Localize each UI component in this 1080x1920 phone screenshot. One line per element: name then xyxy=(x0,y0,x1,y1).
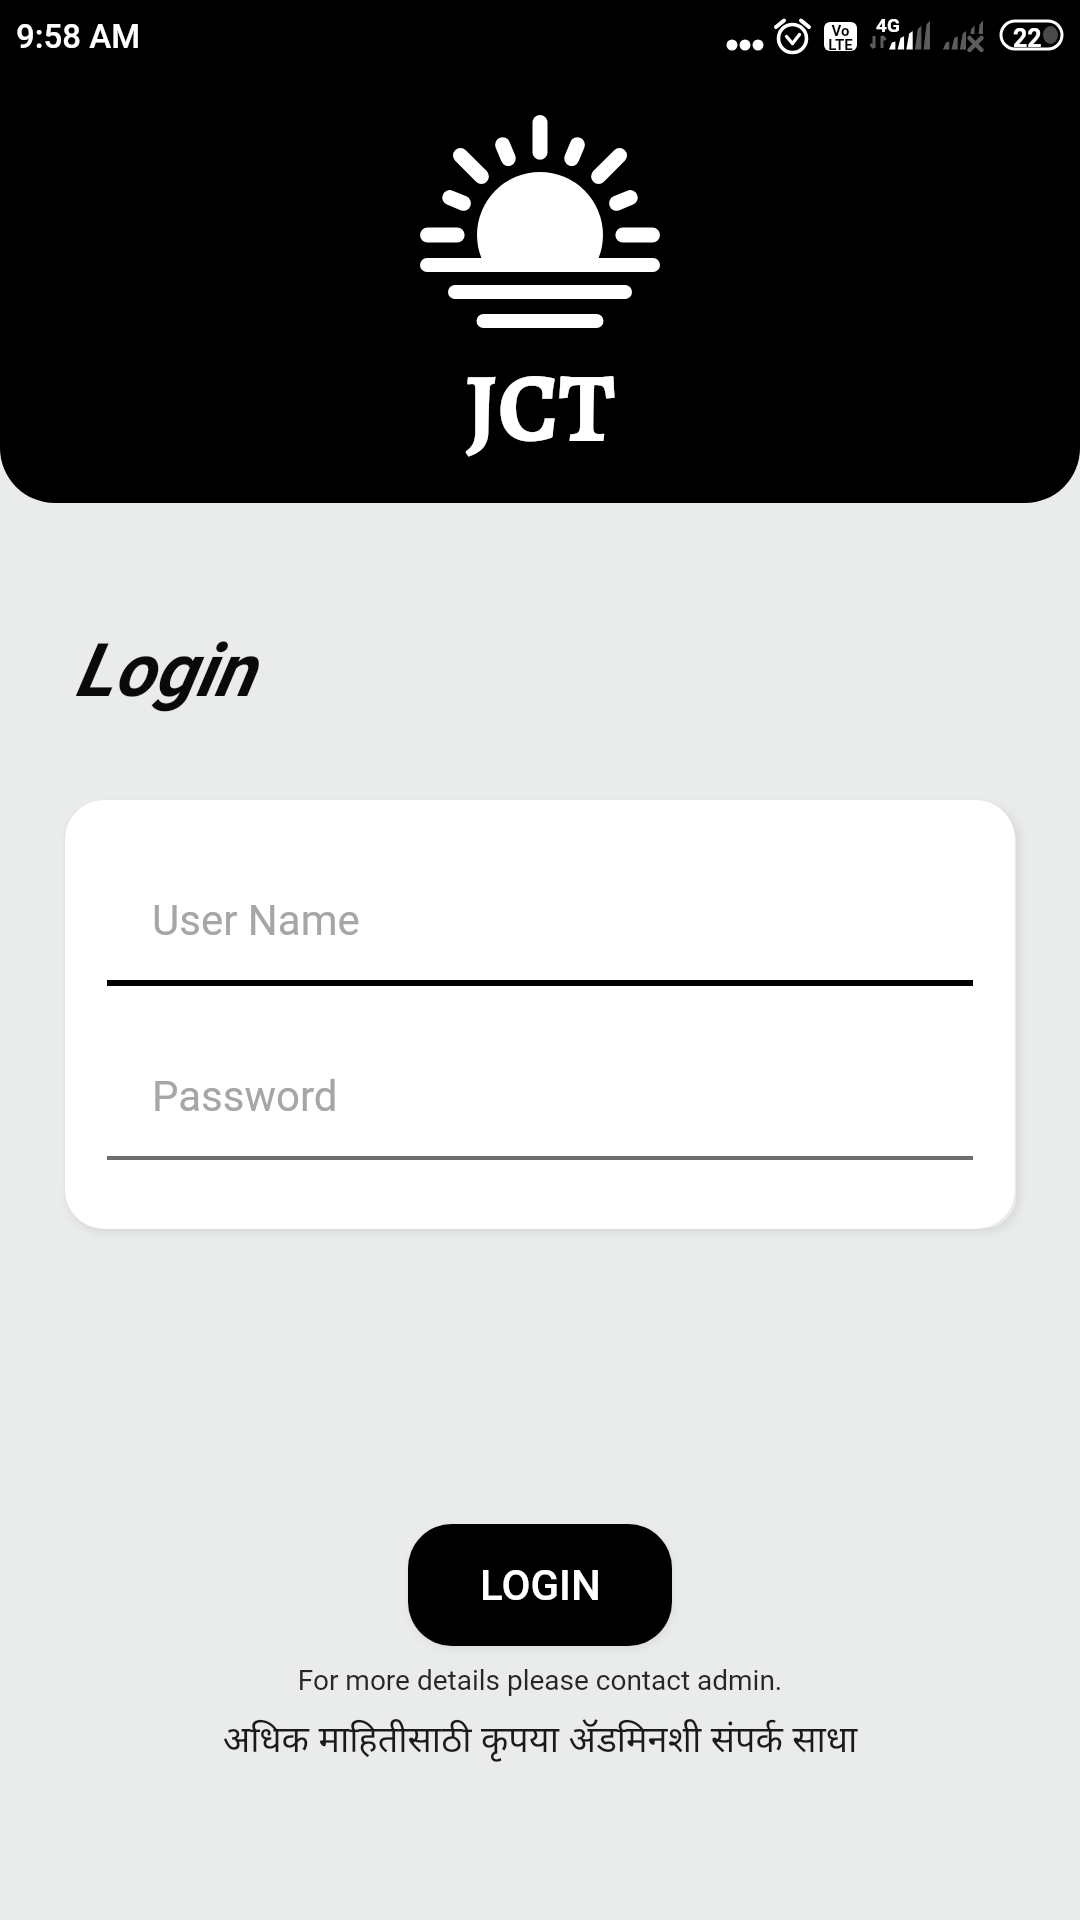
staticText: Login xyxy=(75,627,255,714)
staticText: Vo LTE xyxy=(828,22,853,51)
staticText: अधिक माहितीसाठी कृपया ॲडमिनशी संपर्क साध… xyxy=(0,1714,1080,1763)
staticText: 4G xyxy=(876,14,900,36)
staticText: JCT xyxy=(0,332,1080,486)
staticText: 9:58 AM xyxy=(16,17,141,56)
staticText: Password xyxy=(152,1072,338,1121)
staticText: LOGIN xyxy=(480,1561,601,1610)
button[interactable]: Password input xyxy=(107,1036,973,1166)
staticText: User Name xyxy=(152,896,360,945)
staticText: 22 xyxy=(1013,24,1042,53)
button[interactable]: LOGIN xyxy=(408,1524,672,1646)
staticText: For more details please contact admin. xyxy=(0,1664,1080,1697)
button[interactable]: User Name input xyxy=(107,860,973,986)
other: JCT sunrise logo xyxy=(409,105,671,340)
